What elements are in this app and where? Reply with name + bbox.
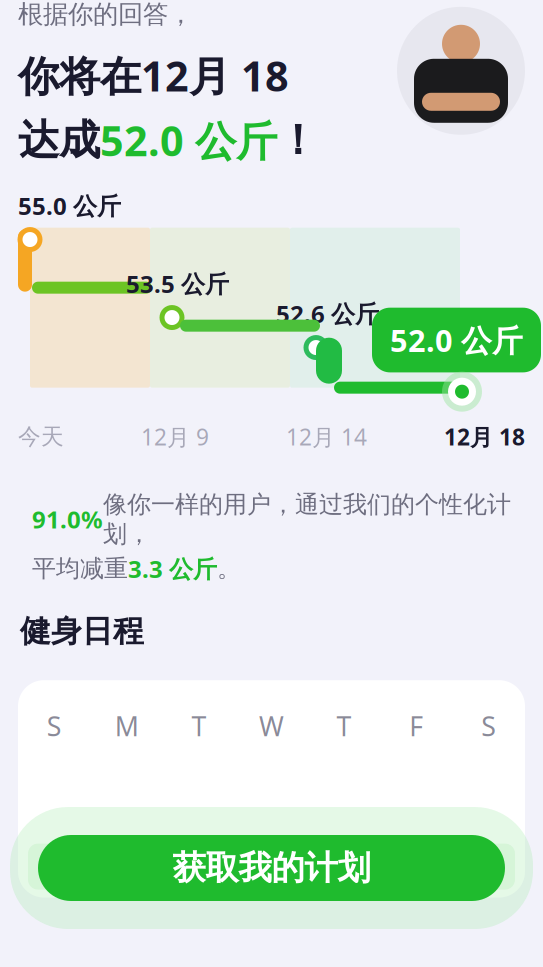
staticText: 你将在12月 18 (18, 48, 289, 103)
staticText: 健身日程 (20, 612, 144, 650)
staticText: 12 (327, 849, 357, 884)
staticText: W (259, 708, 284, 744)
staticText: 。 (217, 554, 241, 583)
staticText: 91.0% (32, 503, 103, 535)
staticText: M (115, 708, 139, 744)
staticText: 获取我的计划 (172, 847, 370, 888)
staticText: T (192, 708, 207, 744)
staticText: 今天 (18, 423, 64, 451)
staticText: 达成 (18, 115, 100, 166)
staticText: S (481, 708, 496, 744)
staticText: 53.5 公斤 (126, 268, 229, 300)
staticText: 12月 18 (444, 422, 525, 452)
staticText: 根据你的回答， (18, 0, 193, 30)
staticText: 12月 9 (141, 422, 209, 452)
button[interactable]: 获取我的计划 (0, 807, 543, 929)
staticText: 平均减重 (32, 554, 128, 583)
staticText: S (47, 708, 62, 744)
staticText: 52.0 公斤 (390, 320, 523, 360)
staticText: F (409, 708, 423, 744)
staticText: 像你一样的用户，通过我们的个性化计划， (103, 490, 511, 549)
staticText: 11 (256, 849, 286, 884)
staticText: 52.0 公斤 (100, 113, 277, 168)
staticText: ！ (277, 115, 318, 166)
staticText: 10 (186, 849, 216, 884)
staticText: 12月 14 (286, 422, 367, 452)
staticText: T (336, 708, 351, 744)
staticText: 52.6 公斤 (276, 298, 379, 330)
staticText: 55.0 公斤 (18, 190, 121, 222)
staticText: 3.3 公斤 (128, 553, 217, 584)
